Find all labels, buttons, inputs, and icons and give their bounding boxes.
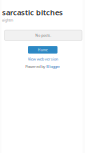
staticText: Blogger. xyxy=(46,64,60,69)
staticText: Powered by xyxy=(25,64,45,69)
staticText: sarcastic bitches xyxy=(2,7,63,17)
staticText: aightm xyxy=(2,18,13,23)
staticText: View web version xyxy=(28,56,58,62)
staticText: Home xyxy=(38,47,48,52)
button[interactable]: Home xyxy=(28,46,57,54)
staticText: No posts. xyxy=(35,33,51,38)
button[interactable]: View web version xyxy=(2,57,83,61)
button[interactable]: Blogger. xyxy=(46,64,60,69)
